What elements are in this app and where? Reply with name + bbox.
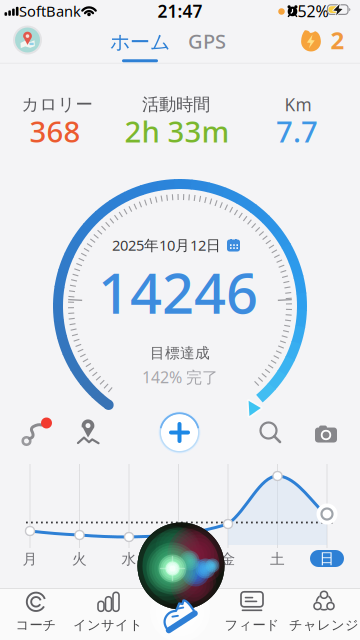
staticText: コーチ bbox=[15, 617, 56, 633]
staticText: 目標達成 bbox=[150, 344, 210, 362]
staticText: 活動時間 bbox=[142, 94, 210, 115]
button[interactable]: 水 bbox=[118, 547, 139, 571]
button[interactable]: 記録を追加 bbox=[157, 410, 201, 454]
button[interactable]: 歩く bbox=[161, 604, 195, 628]
staticText: 金 bbox=[220, 550, 235, 568]
button[interactable]: 火 bbox=[69, 547, 90, 571]
staticText: 日 bbox=[319, 549, 334, 567]
staticText: チャレンジ bbox=[289, 617, 359, 633]
button[interactable]: ルート bbox=[20, 416, 54, 448]
button[interactable]: プロフィール bbox=[13, 25, 42, 54]
button[interactable]: GPS bbox=[182, 22, 232, 60]
staticText: 21:47 bbox=[157, 0, 202, 22]
button[interactable]: 2025年10月12日 bbox=[112, 235, 240, 255]
staticText: 火 bbox=[72, 550, 87, 568]
button[interactable]: 検索 bbox=[260, 422, 282, 444]
button[interactable]: フィード bbox=[224, 591, 279, 633]
staticText: 月 bbox=[22, 550, 37, 568]
staticText: 142% 完了 bbox=[142, 366, 218, 388]
staticText: SoftBank bbox=[19, 1, 81, 21]
staticText: 14246 bbox=[98, 255, 258, 329]
button[interactable]: 日 bbox=[310, 549, 344, 567]
button[interactable]: カメラ bbox=[314, 424, 337, 443]
staticText: 木 bbox=[171, 550, 186, 568]
button[interactable]: 金 bbox=[217, 547, 238, 571]
button[interactable]: 土 bbox=[267, 547, 288, 571]
staticText: 水 bbox=[121, 550, 136, 568]
button[interactable]: ストリーク bbox=[300, 24, 344, 56]
staticText: 368 bbox=[29, 111, 80, 150]
staticText: 2 bbox=[330, 24, 344, 56]
staticText: Km bbox=[284, 93, 311, 116]
staticText: 2025年10月12日 bbox=[112, 235, 221, 255]
button[interactable]: スポット bbox=[77, 419, 101, 445]
staticText: ホーム bbox=[110, 30, 170, 54]
staticText: GPS bbox=[188, 28, 226, 54]
button[interactable]: コーチ bbox=[15, 591, 56, 633]
staticText: 52% bbox=[297, 0, 328, 22]
button[interactable]: ホーム bbox=[110, 30, 170, 62]
staticText: カロリー bbox=[21, 94, 92, 115]
button[interactable]: チャレンジ bbox=[289, 591, 359, 633]
staticText: 2h 33m bbox=[124, 111, 229, 150]
button[interactable]: 木 bbox=[168, 547, 189, 571]
button[interactable]: 月 bbox=[19, 547, 40, 571]
staticText: 7.7 bbox=[276, 111, 318, 150]
staticText: インサイト bbox=[73, 617, 143, 633]
button[interactable]: インサイト bbox=[73, 591, 143, 633]
staticText: フィード bbox=[224, 617, 279, 633]
staticText: 土 bbox=[270, 550, 285, 568]
